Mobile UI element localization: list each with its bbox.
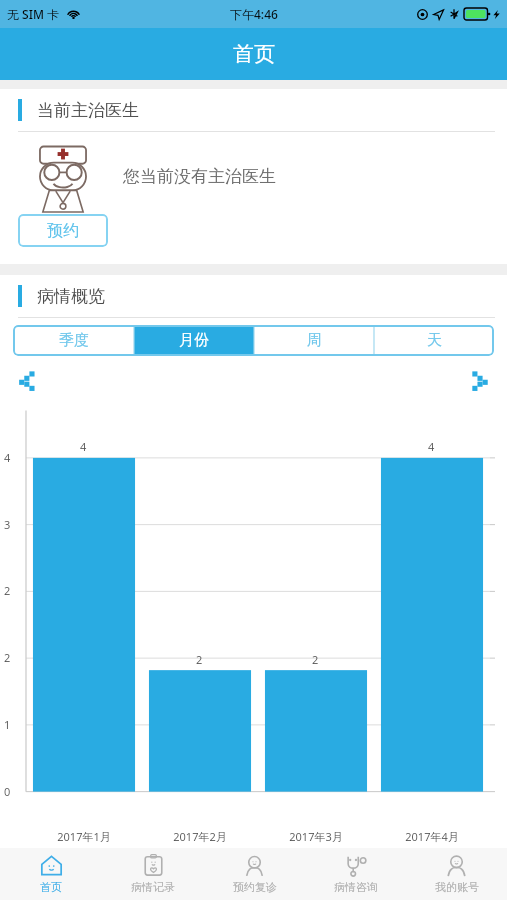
staticText: 当前主治医生	[37, 100, 139, 121]
staticText: 季度	[59, 331, 89, 350]
staticText: 3	[4, 517, 11, 532]
button[interactable]: 周	[254, 325, 374, 356]
staticText: 1	[4, 717, 11, 732]
staticText: 首页	[40, 880, 62, 894]
staticText: 2017年3月	[289, 829, 343, 844]
staticText: 预约复诊	[233, 880, 277, 894]
staticText: 4	[428, 439, 435, 454]
staticText: 无 SIM 卡	[7, 6, 60, 22]
staticText: 预约	[47, 221, 79, 241]
staticText: 2	[196, 652, 203, 667]
staticText: 2017年4月	[405, 829, 459, 844]
staticText: 病情咨询	[334, 880, 378, 894]
staticText: 2	[4, 650, 11, 665]
staticText: 我的账号	[435, 880, 479, 894]
staticText: 2017年1月	[57, 829, 111, 844]
staticText: 2	[312, 652, 319, 667]
staticText: 2	[4, 583, 11, 598]
button[interactable]: 上一页	[13, 366, 41, 394]
staticText: 您当前没有主治医生	[123, 166, 276, 187]
staticText: 4	[80, 439, 87, 454]
button[interactable]: 季度	[13, 325, 134, 356]
button[interactable]: 预约	[18, 214, 108, 247]
staticText: 病情概览	[37, 286, 105, 307]
button[interactable]: 我的账号	[406, 848, 507, 900]
button[interactable]: 预约复诊	[204, 848, 305, 900]
staticText: 首页	[233, 41, 275, 67]
staticText: 病情记录	[131, 880, 175, 894]
button[interactable]: 病情记录	[102, 848, 204, 900]
button[interactable]: 下一页	[466, 366, 494, 394]
staticText: 月份	[179, 331, 209, 350]
button[interactable]: 首页	[0, 848, 102, 900]
staticText: 0	[4, 784, 11, 799]
staticText: 下午4:46	[230, 6, 278, 22]
staticText: 4	[4, 450, 11, 465]
button[interactable]: 月份	[134, 325, 254, 356]
button[interactable]: 天	[374, 325, 494, 356]
staticText: 天	[427, 331, 442, 350]
staticText: 周	[307, 331, 322, 350]
staticText: 2017年2月	[173, 829, 227, 844]
button[interactable]: 病情咨询	[305, 848, 406, 900]
